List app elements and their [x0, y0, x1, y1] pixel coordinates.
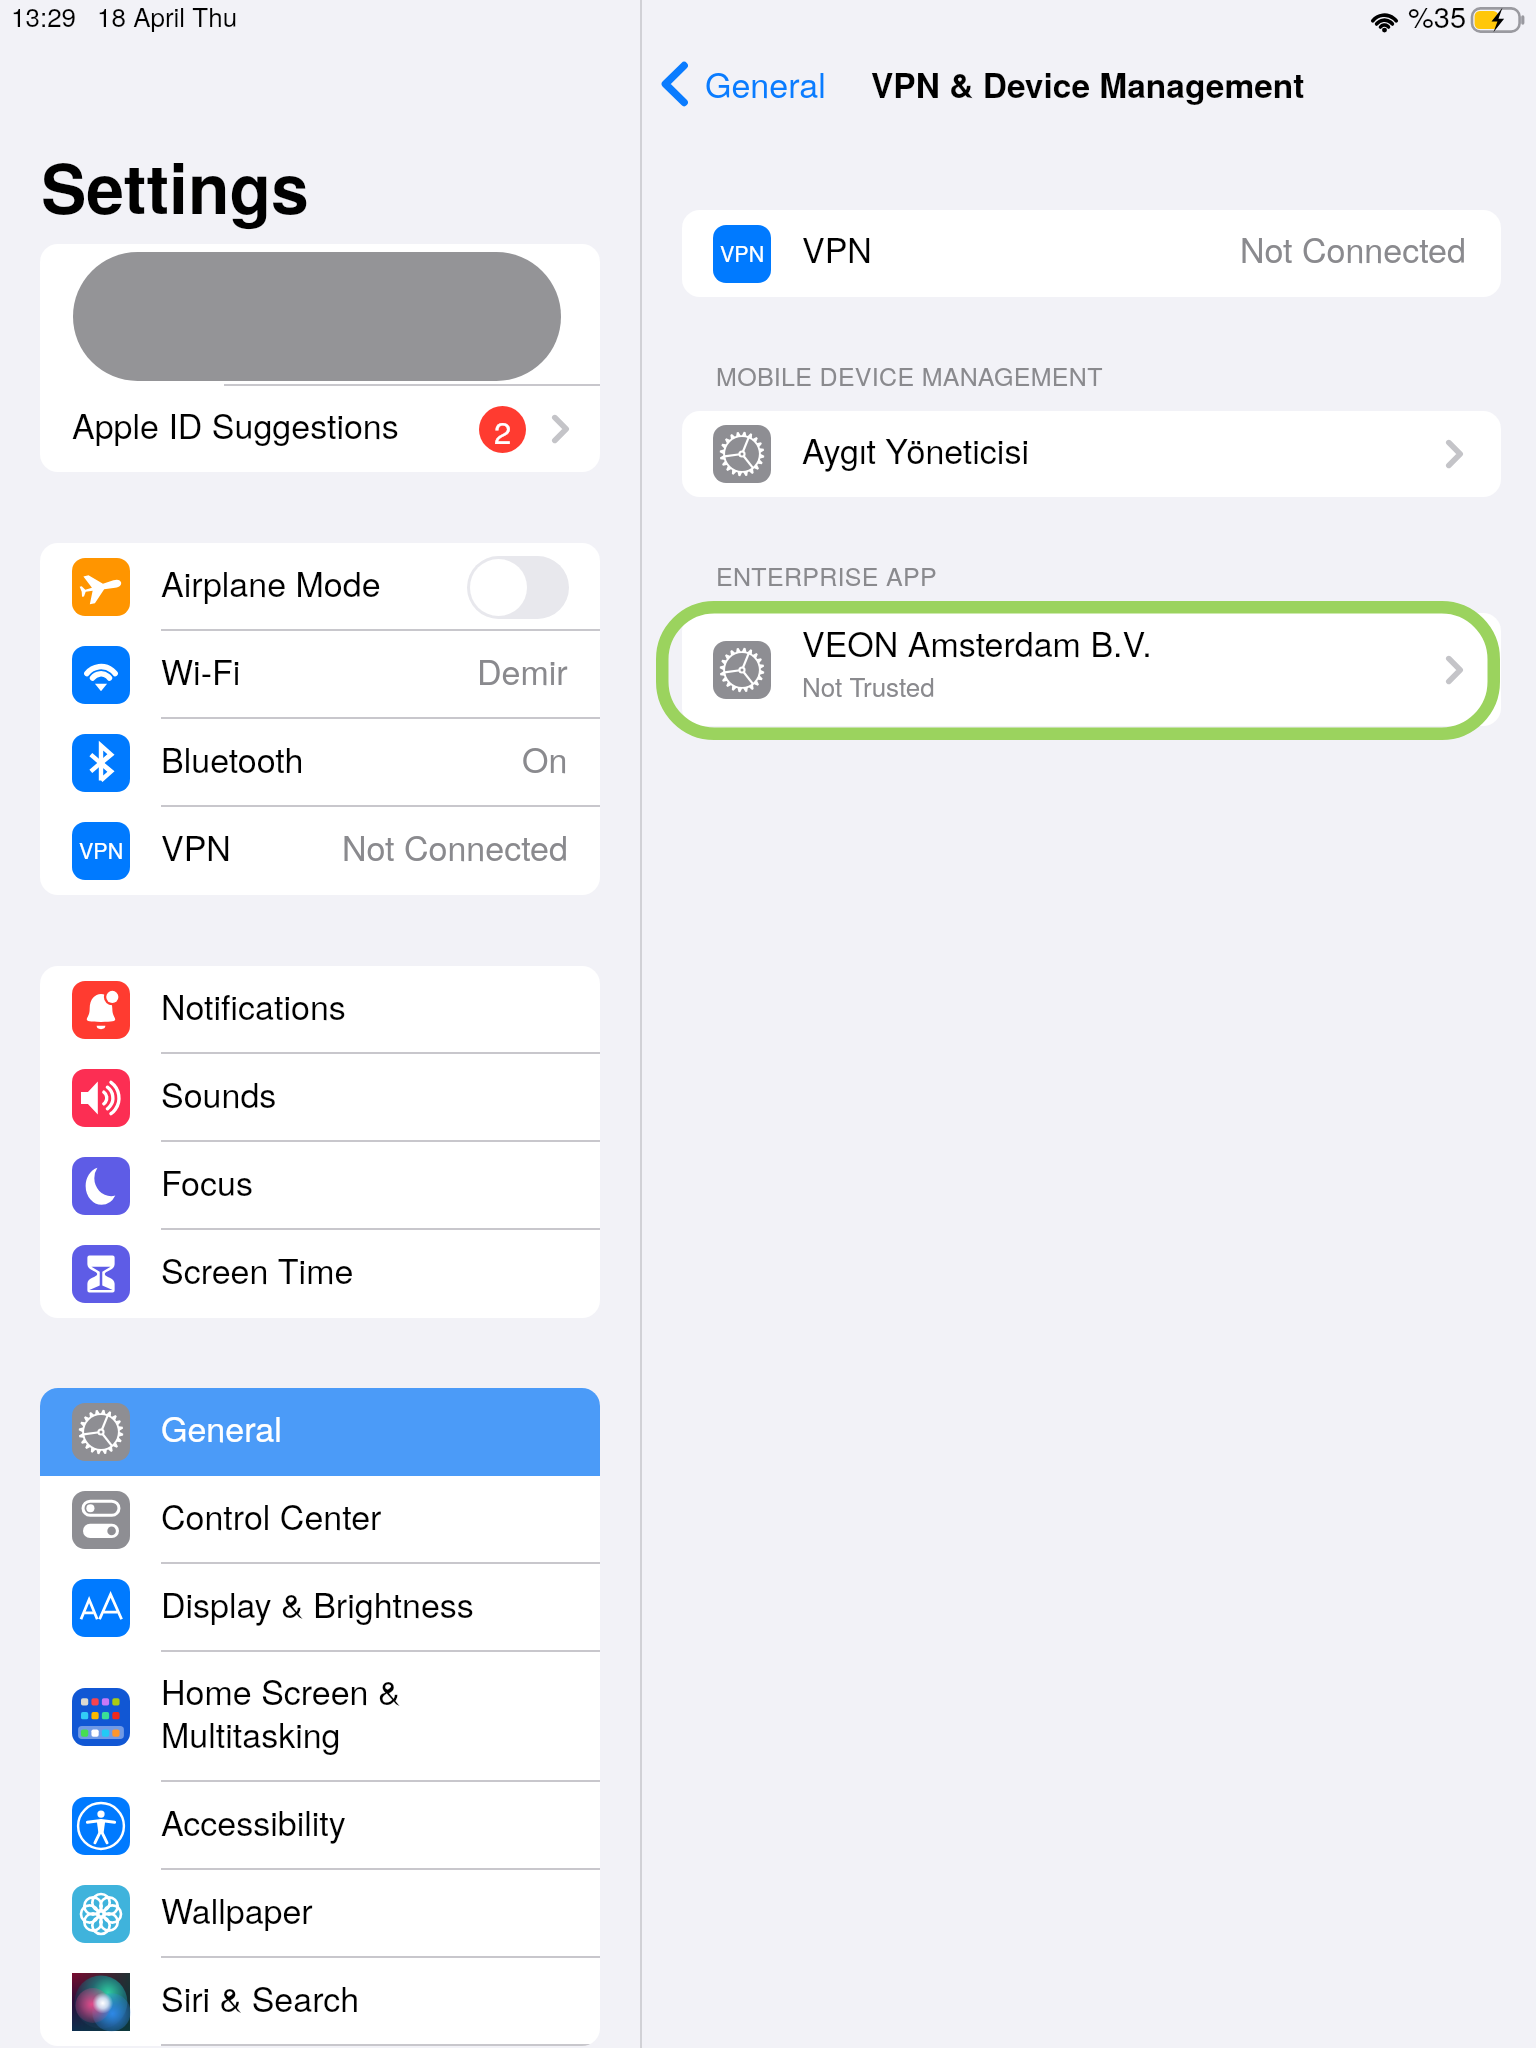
staticText: Control Center — [161, 1491, 382, 1540]
staticText: Bluetooth — [161, 734, 304, 783]
button[interactable]: General — [40, 1388, 600, 1476]
staticText: ENTERPRISE APP — [716, 557, 937, 593]
staticText: Apple ID Suggestions — [72, 400, 399, 449]
staticText: Home Screen & Multitasking — [161, 1666, 401, 1758]
staticText: 13:29 — [11, 0, 77, 34]
button[interactable]: Notifications — [40, 966, 600, 1054]
staticText: Settings — [41, 137, 309, 234]
button[interactable]: Home Screen & Multitasking — [40, 1652, 600, 1782]
staticText: Wi-Fi — [161, 646, 241, 695]
button[interactable]: Screen Time — [40, 1230, 600, 1318]
staticText: VPN & Device Management — [871, 60, 1305, 108]
staticText: Display & Brightness — [161, 1579, 474, 1628]
staticText: Not Connected — [342, 822, 568, 871]
staticText: VPN — [720, 237, 765, 268]
staticText: On — [522, 734, 568, 783]
button[interactable]: Wallpaper — [40, 1870, 600, 1958]
other: Wi-Fi — [1370, 9, 1399, 31]
staticText: Demir — [477, 646, 568, 695]
staticText: Accessibility — [161, 1797, 346, 1846]
button[interactable]: VPN — [682, 210, 1501, 297]
staticText: VPN — [79, 834, 124, 865]
staticText: General — [705, 59, 826, 108]
button[interactable]: VPN — [40, 807, 600, 895]
button[interactable]: Focus — [40, 1142, 600, 1230]
button[interactable]: Accessibility — [40, 1782, 600, 1870]
button[interactable]: Sounds — [40, 1054, 600, 1142]
button[interactable]: Siri & Search — [40, 1958, 600, 2046]
button[interactable]: Display & Brightness — [40, 1564, 600, 1652]
button[interactable]: General — [642, 55, 834, 112]
staticText: Not Trusted — [802, 667, 935, 704]
staticText: %35 — [1408, 0, 1467, 35]
button[interactable]: Airplane Mode — [40, 543, 600, 631]
staticText: General — [161, 1403, 282, 1452]
staticText: Wallpaper — [161, 1885, 313, 1934]
staticText: Sounds — [161, 1069, 277, 1118]
staticText: Airplane Mode — [161, 558, 381, 607]
button[interactable] — [40, 244, 600, 384]
button[interactable]: Apple ID Suggestions — [40, 386, 600, 472]
staticText: MOBILE DEVICE MANAGEMENT — [716, 357, 1103, 393]
staticText: 2 — [494, 408, 512, 452]
staticText: VEON Amsterdam B.V. — [802, 618, 1152, 667]
staticText: Focus — [161, 1157, 253, 1206]
staticText: Siri & Search — [161, 1973, 360, 2022]
staticText: Notifications — [161, 981, 346, 1030]
staticText: Not Connected — [1240, 224, 1466, 273]
staticText: VPN — [161, 822, 231, 871]
button[interactable]: VEON Amsterdam B.V. — [682, 613, 1501, 726]
staticText: VPN — [802, 224, 872, 273]
other: Battery charging 35 percent — [1472, 7, 1525, 33]
button[interactable]: Aygıt Yöneticisi — [682, 411, 1501, 497]
staticText: 18 April Thu — [97, 0, 238, 34]
staticText: Aygıt Yöneticisi — [802, 425, 1029, 474]
staticText: Screen Time — [161, 1245, 354, 1294]
button[interactable]: Airplane Mode toggle — [467, 556, 569, 619]
button[interactable]: Wi-Fi — [40, 631, 600, 719]
button[interactable]: Control Center — [40, 1476, 600, 1564]
button[interactable]: Bluetooth — [40, 719, 600, 807]
